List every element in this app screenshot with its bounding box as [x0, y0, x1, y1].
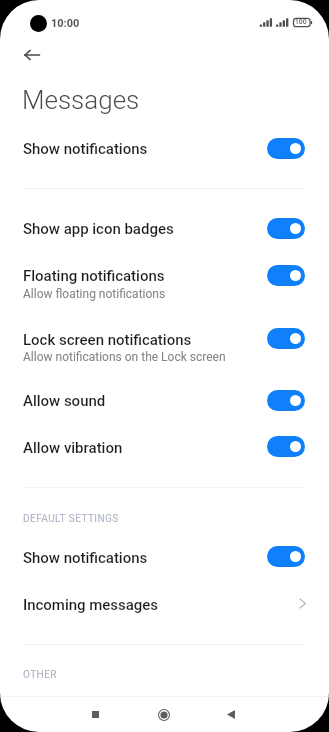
staticText: Allow vibration	[23, 439, 123, 457]
staticText: Allow notifications on the Lock screen	[23, 350, 226, 364]
button[interactable]: Toggle Lock screen notifications	[267, 328, 305, 349]
button[interactable]	[0, 539, 329, 577]
button[interactable]	[0, 321, 329, 369]
button[interactable]: Home	[142, 696, 187, 732]
button[interactable]: Toggle Allow vibration	[267, 436, 305, 457]
staticText: 100	[295, 18, 307, 26]
button[interactable]	[0, 257, 329, 305]
button[interactable]: Toggle Allow sound	[267, 390, 305, 411]
staticText: Lock screen notifications	[23, 331, 192, 349]
button[interactable]: Toggle Floating notifications	[267, 265, 305, 286]
button[interactable]: Toggle Show app icon badges	[267, 218, 305, 239]
staticText: Show app icon badges	[23, 220, 174, 238]
button[interactable]	[0, 210, 329, 248]
button[interactable]: Recent apps	[73, 696, 118, 732]
staticText: Messages	[22, 85, 140, 115]
button[interactable]: Toggle Show notifications	[267, 546, 305, 567]
staticText: Floating notifications	[23, 267, 165, 285]
button[interactable]	[0, 586, 329, 624]
button[interactable]	[0, 656, 329, 690]
button[interactable]	[0, 382, 329, 420]
staticText: Show notifications	[23, 140, 148, 158]
staticText: OTHER	[23, 669, 57, 681]
staticText: Incoming messages	[23, 596, 158, 614]
staticText: DEFAULT SETTINGS	[23, 513, 119, 525]
button[interactable]	[0, 429, 329, 467]
staticText: Allow sound	[23, 392, 106, 410]
button[interactable]	[0, 500, 329, 534]
button[interactable]: Back	[208, 696, 253, 732]
staticText: Allow floating notifications	[23, 287, 166, 301]
staticText: 10:00	[51, 17, 80, 30]
staticText: Show notifications	[23, 549, 148, 567]
button[interactable]: Back	[14, 39, 50, 71]
button[interactable]	[0, 130, 329, 168]
button[interactable]: Toggle Show notifications	[267, 138, 305, 159]
